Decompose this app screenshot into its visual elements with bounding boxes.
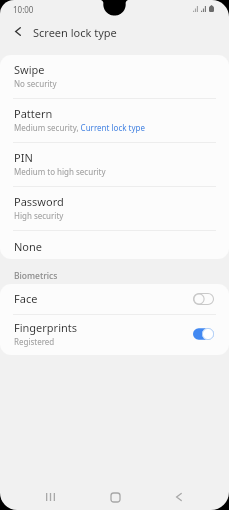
button[interactable]: Pattern [0, 99, 229, 142]
staticText: Pattern [14, 106, 53, 121]
button[interactable]: Home [83, 484, 147, 510]
staticText: Medium to high security [14, 166, 106, 177]
staticText: High security [14, 210, 64, 221]
staticText: Medium security, Current lock type [14, 122, 145, 133]
staticText: Registered [14, 336, 55, 347]
staticText: None [14, 239, 43, 254]
staticText: Face [14, 291, 38, 306]
button[interactable]: Back [147, 484, 211, 510]
staticText: Fingerprints [14, 320, 78, 335]
staticText: No security [14, 78, 57, 89]
staticText: Swipe [14, 62, 45, 77]
button[interactable]: Swipe [0, 55, 229, 98]
staticText: Password [14, 194, 64, 209]
staticText: PIN [14, 150, 33, 165]
staticText: Biometrics [14, 270, 58, 282]
button[interactable]: PIN [0, 143, 229, 186]
button[interactable]: None [0, 231, 229, 259]
button[interactable]: Back [3, 18, 33, 47]
button[interactable]: Password [0, 187, 229, 230]
button[interactable]: Turn off [193, 328, 214, 340]
button[interactable]: Recent apps [18, 484, 83, 510]
button[interactable]: Turn on [193, 293, 214, 305]
staticText: Screen lock type [33, 25, 117, 40]
button[interactable]: Fingerprints [0, 315, 229, 355]
button[interactable]: Face [0, 284, 229, 314]
staticText: 10:00 [13, 4, 34, 15]
